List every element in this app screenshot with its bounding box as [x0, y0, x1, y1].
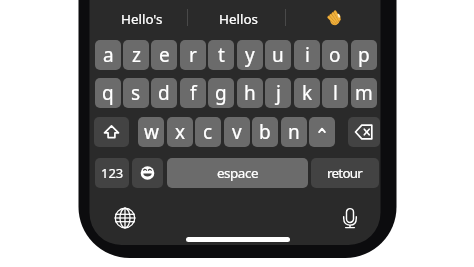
staticText: n	[288, 119, 300, 145]
button[interactable]: b	[252, 117, 278, 147]
button[interactable]: r	[180, 40, 206, 70]
staticText: y	[245, 42, 255, 68]
button[interactable]: Dictation	[338, 206, 362, 230]
button[interactable]: Hello's	[102, 8, 182, 30]
button[interactable]: espace	[167, 158, 308, 188]
button[interactable]: q	[95, 78, 121, 108]
button[interactable]: k	[294, 78, 320, 108]
button[interactable]: v	[224, 117, 250, 147]
staticText: x	[175, 119, 186, 145]
button[interactable]: n	[281, 117, 307, 147]
button[interactable]: Change keyboard language	[113, 206, 137, 230]
button[interactable]: a	[95, 40, 121, 70]
staticText: v	[232, 119, 242, 145]
staticText: l	[333, 80, 338, 106]
button[interactable]: h	[237, 78, 263, 108]
button[interactable]: z	[123, 40, 149, 70]
button[interactable]: f	[180, 78, 206, 108]
button[interactable]: Shift	[94, 117, 129, 147]
staticText: o	[329, 42, 341, 68]
staticText: a	[103, 42, 114, 68]
staticText: m	[355, 80, 373, 106]
staticText: u	[272, 42, 284, 68]
button[interactable]: j	[265, 78, 291, 108]
button[interactable]: Emoji keyboard	[132, 158, 163, 188]
staticText: k	[302, 80, 313, 106]
button[interactable]: i	[294, 40, 320, 70]
staticText: b	[259, 119, 271, 145]
staticText: p	[358, 42, 370, 68]
button[interactable]: 123	[95, 158, 129, 188]
button[interactable]: u	[265, 40, 291, 70]
button[interactable]: Backspace	[348, 117, 380, 147]
button[interactable]: w	[138, 117, 164, 147]
button[interactable]: l	[322, 78, 348, 108]
staticText: h	[244, 80, 256, 106]
button[interactable]: y	[237, 40, 263, 70]
button[interactable]: s	[123, 78, 149, 108]
staticText: g	[215, 80, 227, 106]
staticText: t	[218, 42, 225, 68]
button[interactable]: o	[322, 40, 348, 70]
button[interactable]: x	[167, 117, 193, 147]
staticText: 123	[101, 164, 124, 182]
staticText: e	[159, 42, 170, 68]
staticText: s	[131, 80, 141, 106]
staticText: d	[158, 80, 170, 106]
staticText: j	[276, 80, 281, 106]
staticText: w	[144, 119, 159, 145]
button[interactable]: Circumflex accent	[309, 117, 335, 147]
staticText: f	[190, 80, 197, 106]
button[interactable]: p	[351, 40, 377, 70]
staticText: Hellos	[219, 10, 258, 28]
staticText: c	[203, 119, 213, 145]
button[interactable]: d	[151, 78, 177, 108]
staticText: retour	[327, 164, 363, 182]
button[interactable]: e	[151, 40, 177, 70]
button[interactable]: Hellos	[198, 8, 278, 30]
staticText: r	[189, 42, 197, 68]
staticText: z	[132, 42, 141, 68]
staticText: i	[305, 42, 310, 68]
button[interactable]: g	[208, 78, 234, 108]
staticText: Hello's	[121, 10, 163, 28]
button[interactable]: t	[208, 40, 234, 70]
button[interactable]: retour	[311, 158, 379, 188]
staticText: espace	[217, 164, 258, 182]
button[interactable]: m	[351, 78, 377, 108]
button[interactable]: c	[195, 117, 221, 147]
staticText: q	[102, 80, 114, 106]
button[interactable]: Waving hand emoji suggestion	[324, 7, 346, 29]
